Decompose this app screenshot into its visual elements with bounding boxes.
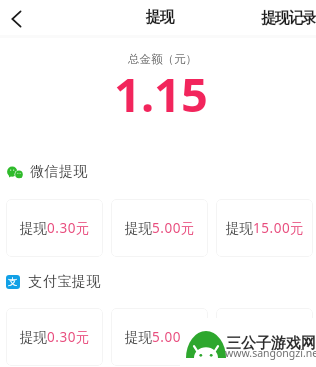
button[interactable]: Back: [0, 0, 34, 38]
button[interactable]: 提现15.00元: [216, 199, 313, 257]
staticText: 支: [8, 276, 18, 288]
button[interactable]: 支: [6, 270, 101, 294]
button[interactable]: 提现0.30元: [6, 199, 103, 257]
staticText: www.sangongzi.net: [225, 346, 316, 360]
button[interactable]: 提现5.00元: [111, 308, 208, 366]
staticText: 提现0.30元: [20, 219, 90, 237]
staticText: 微信提现: [30, 163, 89, 181]
button[interactable]: 提现0.30元: [6, 308, 103, 366]
button[interactable]: 提现15.00元: [216, 308, 313, 366]
staticText: 提现15.00元: [226, 328, 304, 346]
staticText: 提现0.30元: [20, 328, 90, 346]
button[interactable]: 提现5.00元: [111, 199, 208, 257]
button[interactable]: 微信提现: [6, 160, 89, 184]
staticText: 总金额（元）: [128, 52, 197, 66]
staticText: 提现: [146, 8, 174, 27]
staticText: 支付宝提现: [28, 273, 101, 291]
staticText: 三公子游戏网: [226, 334, 316, 353]
staticText: 提现5.00元: [125, 328, 195, 346]
button[interactable]: 提现记录: [251, 2, 316, 35]
staticText: 提现5.00元: [125, 219, 195, 237]
staticText: 提现15.00元: [226, 219, 304, 237]
staticText: 1.15: [114, 62, 208, 126]
